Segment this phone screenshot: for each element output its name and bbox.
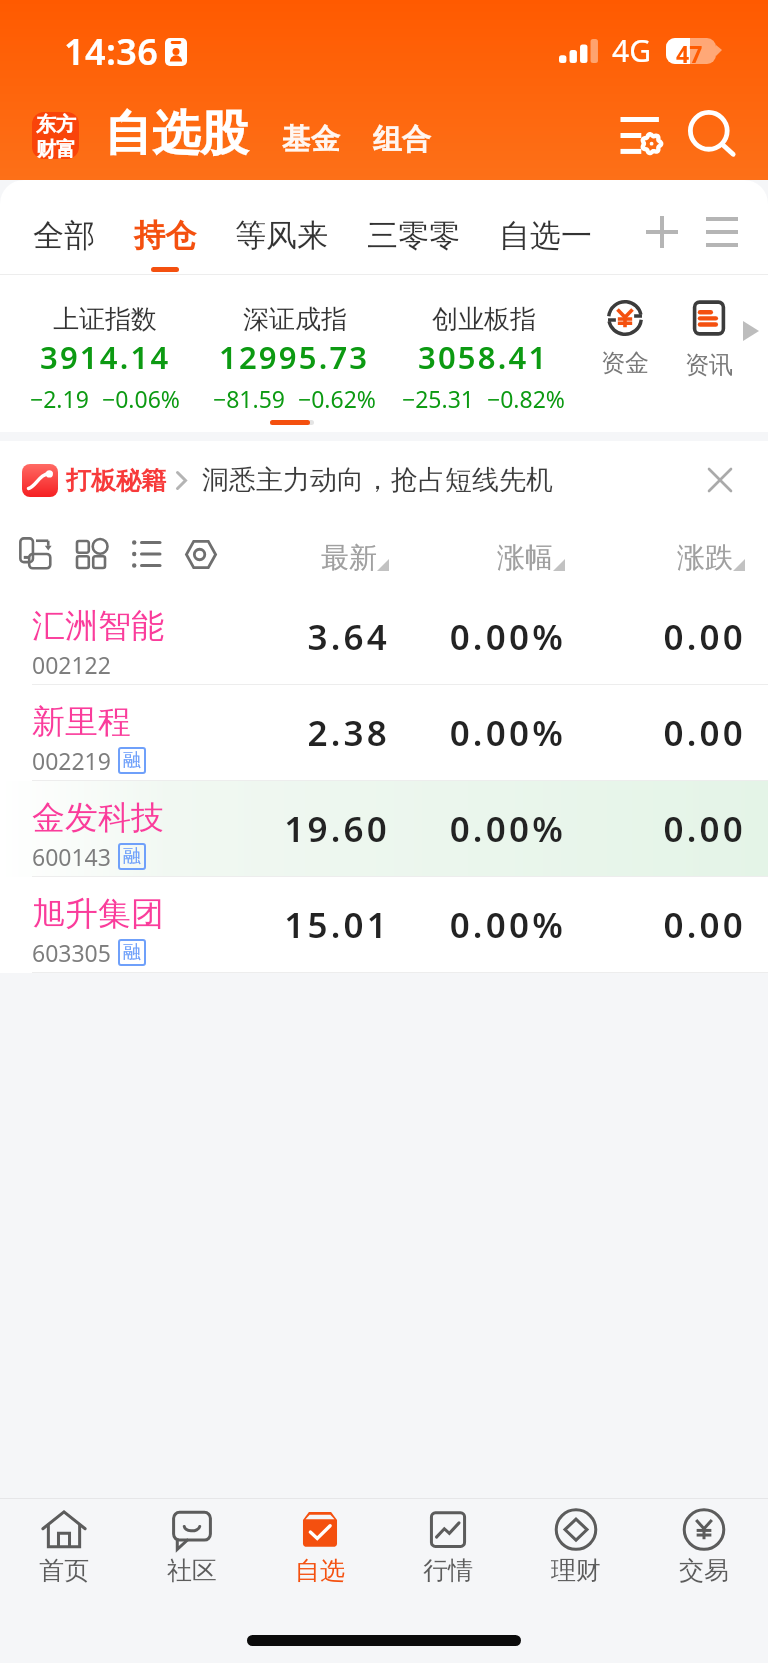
- staticText: 12995.73: [219, 336, 370, 378]
- staticText: 002122: [32, 649, 111, 680]
- button[interactable]: Close banner: [698, 458, 742, 502]
- staticText: −81.59: [213, 383, 285, 414]
- staticText: 0.00: [566, 901, 746, 949]
- staticText: 三零零: [367, 216, 460, 255]
- button[interactable]: 深证成指: [200, 291, 389, 414]
- button[interactable]: 打板秘籍: [0, 441, 768, 519]
- staticText: 15.01: [274, 901, 390, 949]
- staticText: 自选: [295, 1555, 345, 1586]
- staticText: 最新: [321, 540, 377, 575]
- button[interactable]: 交易: [640, 1509, 768, 1586]
- button[interactable]: 等风来: [235, 216, 328, 255]
- staticText: 财富: [36, 137, 76, 159]
- button[interactable]: Grid layout: [68, 531, 114, 577]
- button[interactable]: 基金: [282, 117, 340, 154]
- staticText: 涨幅: [497, 540, 553, 575]
- staticText: 0.00%: [390, 901, 566, 949]
- button[interactable]: 上证指数: [10, 291, 200, 414]
- button[interactable]: 行情: [384, 1509, 512, 1586]
- button[interactable]: 组合: [373, 117, 431, 154]
- button[interactable]: 自选一: [499, 216, 592, 255]
- staticText: 首页: [39, 1555, 89, 1586]
- staticText: 600143: [32, 841, 111, 872]
- staticText: 社区: [167, 1555, 217, 1586]
- button[interactable]: 资金: [587, 300, 663, 378]
- staticText: 旭升集团: [32, 893, 164, 935]
- button[interactable]: Manage groups: [698, 208, 746, 256]
- staticText: 融: [123, 845, 141, 868]
- staticText: 0.00%: [390, 805, 566, 853]
- staticText: 自选一: [499, 216, 592, 255]
- staticText: −0.62%: [298, 383, 376, 414]
- staticText: 行情: [423, 1555, 473, 1586]
- staticText: 47: [676, 38, 703, 64]
- button[interactable]: 理财: [512, 1509, 640, 1586]
- staticText: 东方: [36, 112, 76, 137]
- staticText: 创业板指: [432, 303, 536, 336]
- staticText: 融: [123, 749, 141, 772]
- button[interactable]: 全部: [33, 216, 95, 255]
- staticText: 14:36: [64, 27, 159, 76]
- button[interactable]: 汇洲智能: [0, 589, 768, 685]
- staticText: 洞悉主力动向，抢占短线先机: [202, 463, 553, 497]
- staticText: 3058.41: [418, 336, 549, 378]
- button[interactable]: 东方: [32, 112, 79, 159]
- staticText: −0.82%: [487, 383, 565, 414]
- staticText: 19.60: [274, 805, 390, 853]
- staticText: 融: [123, 941, 141, 964]
- staticText: 打板秘籍: [66, 465, 166, 496]
- button[interactable]: 持仓: [134, 216, 196, 272]
- staticText: 3914.14: [40, 336, 171, 378]
- button[interactable]: 首页: [0, 1509, 128, 1586]
- staticText: 002219: [32, 745, 111, 776]
- staticText: 金发科技: [32, 797, 164, 839]
- button[interactable]: 三零零: [367, 216, 460, 255]
- staticText: 0.00: [566, 805, 746, 853]
- staticText: 603305: [32, 937, 111, 968]
- staticText: 3.64: [274, 613, 390, 661]
- button[interactable]: 资讯: [671, 300, 747, 380]
- staticText: 上证指数: [53, 303, 157, 336]
- button[interactable]: Add group: [638, 208, 686, 256]
- staticText: 0.00: [566, 709, 746, 757]
- staticText: 理财: [551, 1555, 601, 1586]
- staticText: 汇洲智能: [32, 605, 164, 647]
- staticText: 深证成指: [243, 303, 347, 336]
- staticText: 等风来: [235, 216, 328, 255]
- staticText: 4G: [612, 30, 651, 71]
- button[interactable]: Display settings: [178, 531, 224, 577]
- button[interactable]: 创业板指: [389, 291, 578, 414]
- staticText: 2.38: [274, 709, 390, 757]
- button[interactable]: 涨跌: [565, 537, 745, 572]
- staticText: 新里程: [32, 701, 131, 743]
- button[interactable]: 自选: [256, 1509, 384, 1586]
- staticText: 0.00%: [390, 613, 566, 661]
- staticText: 交易: [679, 1555, 729, 1586]
- staticText: 涨跌: [677, 540, 733, 575]
- staticText: 0.00%: [390, 709, 566, 757]
- button[interactable]: Manage watchlist: [616, 110, 668, 160]
- staticText: −25.31: [402, 383, 474, 414]
- button[interactable]: 新里程: [0, 685, 768, 781]
- button[interactable]: 金发科技: [0, 781, 768, 877]
- button[interactable]: 旭升集团: [0, 877, 768, 973]
- button[interactable]: 自选股: [104, 105, 248, 165]
- staticText: 全部: [33, 216, 95, 255]
- staticText: 持仓: [134, 216, 196, 255]
- staticText: −0.06%: [102, 383, 180, 414]
- staticText: 资讯: [685, 350, 733, 380]
- button[interactable]: 社区: [128, 1509, 256, 1586]
- button[interactable]: 涨幅: [389, 537, 565, 572]
- button[interactable]: Switch layout: [13, 531, 59, 577]
- staticText: 资金: [601, 348, 649, 378]
- staticText: 0.00: [566, 613, 746, 661]
- button[interactable]: List layout: [123, 531, 169, 577]
- button[interactable]: Search: [686, 109, 738, 161]
- button[interactable]: 最新: [273, 537, 389, 572]
- staticText: −2.19: [30, 383, 89, 414]
